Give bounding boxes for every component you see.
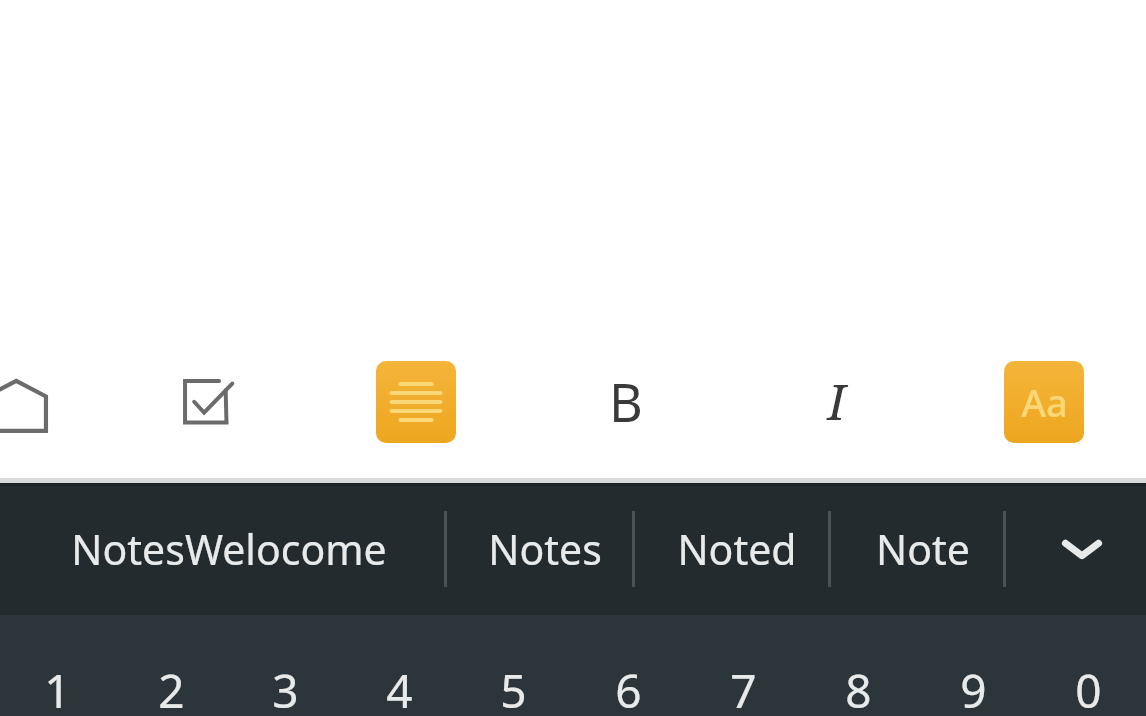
button[interactable]: Paragraph alignment <box>376 361 456 443</box>
button[interactable]: 6 <box>571 659 686 716</box>
staticText: Note <box>876 521 970 577</box>
button[interactable]: Insert shape <box>0 362 58 448</box>
button[interactable]: 7 <box>686 659 801 716</box>
button[interactable]: Note <box>842 483 1003 615</box>
staticText: 9 <box>960 659 987 716</box>
staticText: 7 <box>730 659 757 716</box>
staticText: 5 <box>500 659 527 716</box>
button[interactable]: 0 <box>1031 659 1146 716</box>
button[interactable]: 2 <box>114 659 228 716</box>
staticText: 4 <box>386 659 413 716</box>
staticText: Noted <box>677 521 797 577</box>
staticText: NotesWelocome <box>71 521 387 577</box>
button[interactable]: 8 <box>801 659 916 716</box>
button[interactable]: Notes <box>458 483 632 615</box>
button[interactable]: Expand suggestions <box>1017 483 1146 615</box>
staticText: 1 <box>44 659 71 716</box>
button[interactable]: 1 <box>0 659 114 716</box>
button[interactable]: Checklist <box>172 368 244 440</box>
button[interactable] <box>0 0 1146 483</box>
button[interactable]: 3 <box>228 659 342 716</box>
button[interactable]: 5 <box>456 659 571 716</box>
staticText: 2 <box>158 659 185 716</box>
button[interactable]: 9 <box>916 659 1031 716</box>
button[interactable]: 4 <box>342 659 456 716</box>
staticText: B <box>609 366 643 437</box>
button[interactable]: Text style <box>1004 361 1084 443</box>
staticText: 6 <box>615 659 642 716</box>
staticText: Notes <box>488 521 602 577</box>
button[interactable]: Bold <box>590 365 662 437</box>
staticText: I <box>827 367 846 435</box>
staticText: Aa <box>1021 376 1068 428</box>
staticText: 0 <box>1075 659 1102 716</box>
button[interactable]: NotesWelocome <box>14 483 444 615</box>
staticText: 8 <box>845 659 872 716</box>
staticText: 3 <box>272 659 299 716</box>
button[interactable]: Italic <box>800 365 872 437</box>
button[interactable]: Noted <box>646 483 828 615</box>
